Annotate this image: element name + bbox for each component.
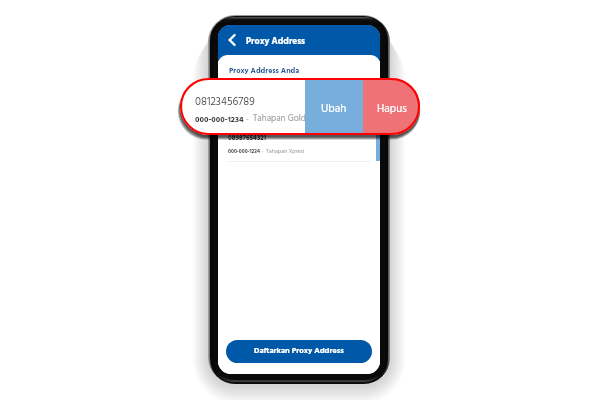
button[interactable]: 08123456789 — [218, 82, 310, 132]
button[interactable]: Daftarkan Proxy Address — [226, 340, 372, 363]
staticText: 08123456789 — [195, 93, 255, 111]
staticText: 08987654321 — [228, 133, 267, 144]
staticText: - — [244, 113, 253, 126]
button[interactable]: Ubah — [305, 78, 363, 135]
button[interactable]: Hapus — [344, 82, 380, 132]
staticText: 000-000-1234 — [228, 147, 260, 156]
staticText: Ubah — [321, 100, 347, 118]
staticText: 08123456789 — [228, 96, 268, 107]
staticText: Hapus — [354, 102, 371, 112]
button[interactable]: 08987654321 — [218, 132, 376, 161]
staticText: Hapus — [377, 100, 407, 118]
staticText: Tahapan Xpresi — [266, 147, 305, 156]
staticText: - — [260, 109, 266, 118]
staticText: Proxy Address Anda — [229, 65, 300, 77]
button[interactable]: Hapus — [363, 78, 420, 135]
staticText: Daftarkan Proxy Address — [254, 345, 344, 358]
staticText: 000-000-1234 — [195, 113, 244, 126]
staticText: Tahapan Gold — [253, 112, 305, 126]
button[interactable]: Ubah — [308, 82, 344, 132]
button[interactable]: Back — [224, 31, 242, 49]
staticText: Ubah — [319, 102, 334, 112]
staticText: Tahapan Gold — [266, 109, 301, 118]
staticText: - — [260, 147, 266, 156]
staticText: Proxy Address — [246, 34, 306, 49]
button[interactable]: Ubah — [376, 132, 380, 161]
staticText: 000-000-1234 — [228, 109, 260, 118]
